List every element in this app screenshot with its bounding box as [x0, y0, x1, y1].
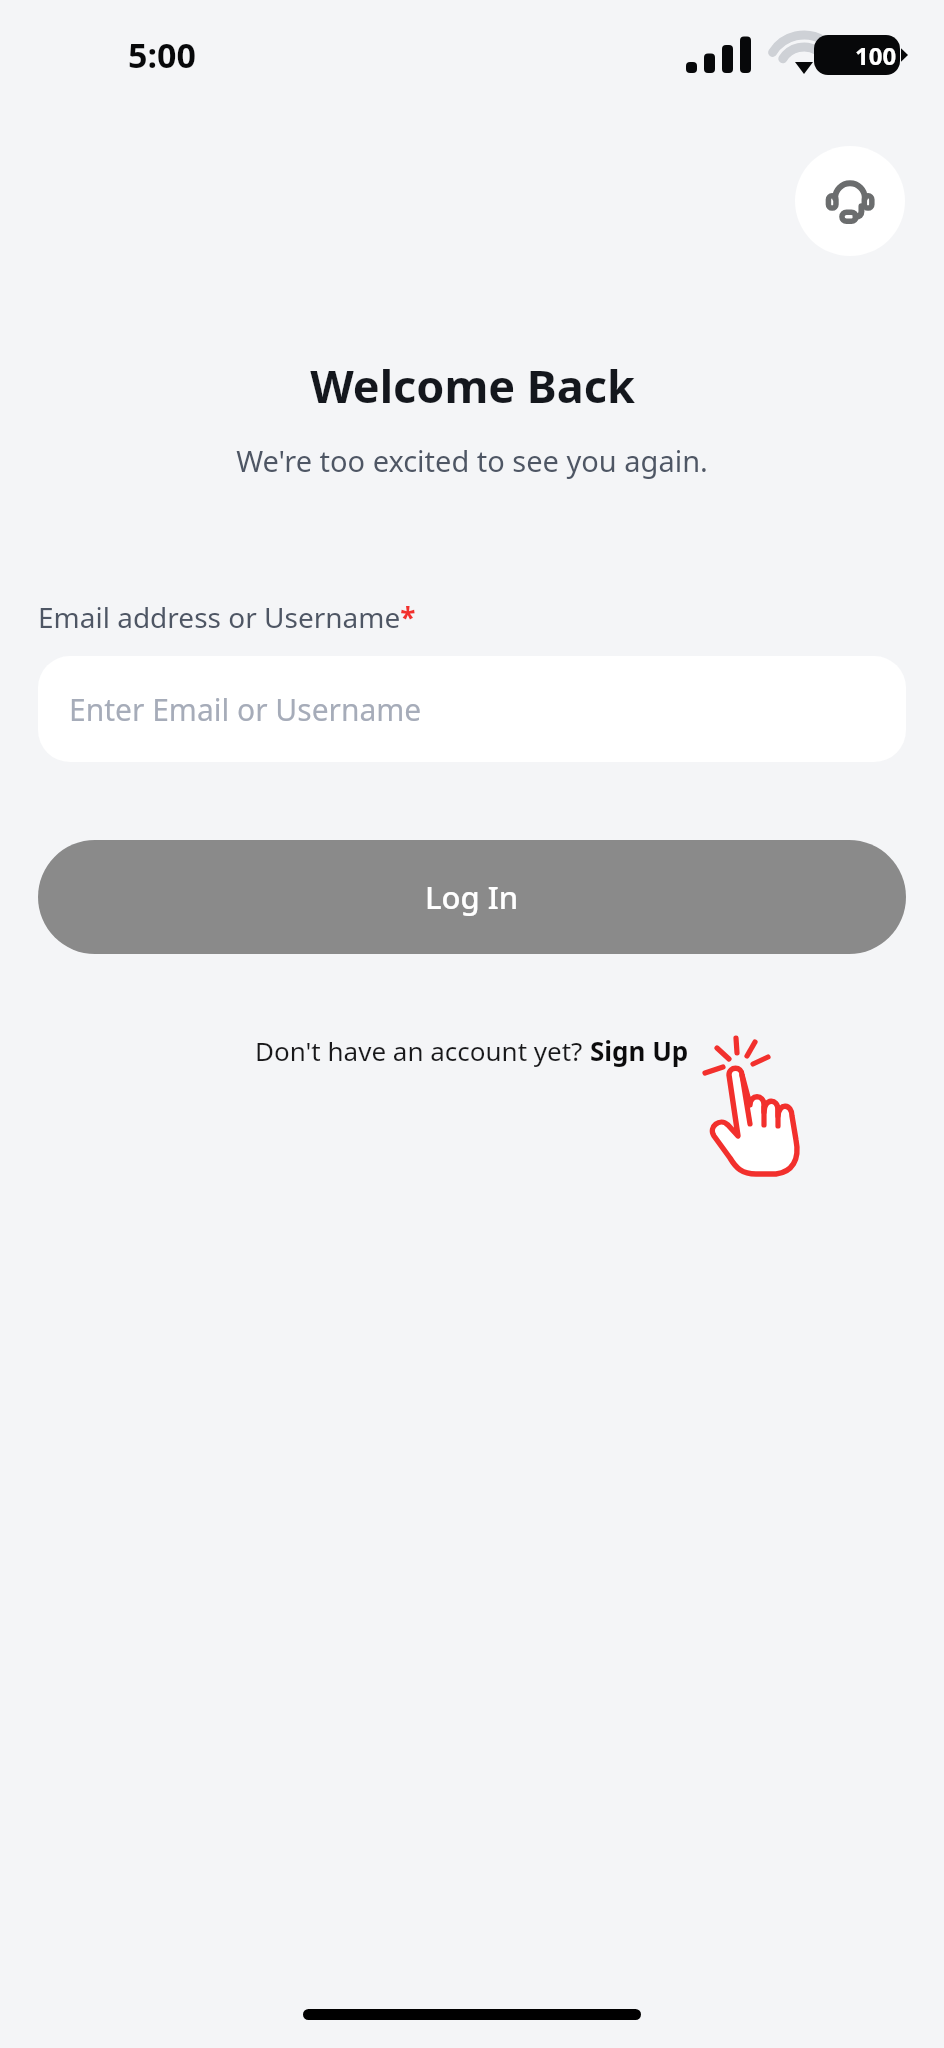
staticText: Welcome Back	[310, 355, 635, 416]
staticText: Don't have an account yet?	[255, 1033, 590, 1068]
button[interactable]: Log In	[38, 840, 906, 954]
button[interactable]: Don't have an account yet?	[255, 1033, 689, 1068]
staticText: We're too excited to see you again.	[236, 441, 708, 480]
staticText: Email address or Username*	[38, 598, 416, 636]
staticText: Log In	[425, 876, 519, 918]
button[interactable]: Enter Email or Username	[38, 656, 906, 762]
button[interactable]: Customer support	[795, 146, 905, 256]
staticText: Sign Up	[590, 1033, 689, 1068]
staticText: 5:00	[128, 32, 196, 78]
staticText: 100	[855, 39, 897, 72]
staticText: Enter Email or Username	[69, 689, 422, 730]
